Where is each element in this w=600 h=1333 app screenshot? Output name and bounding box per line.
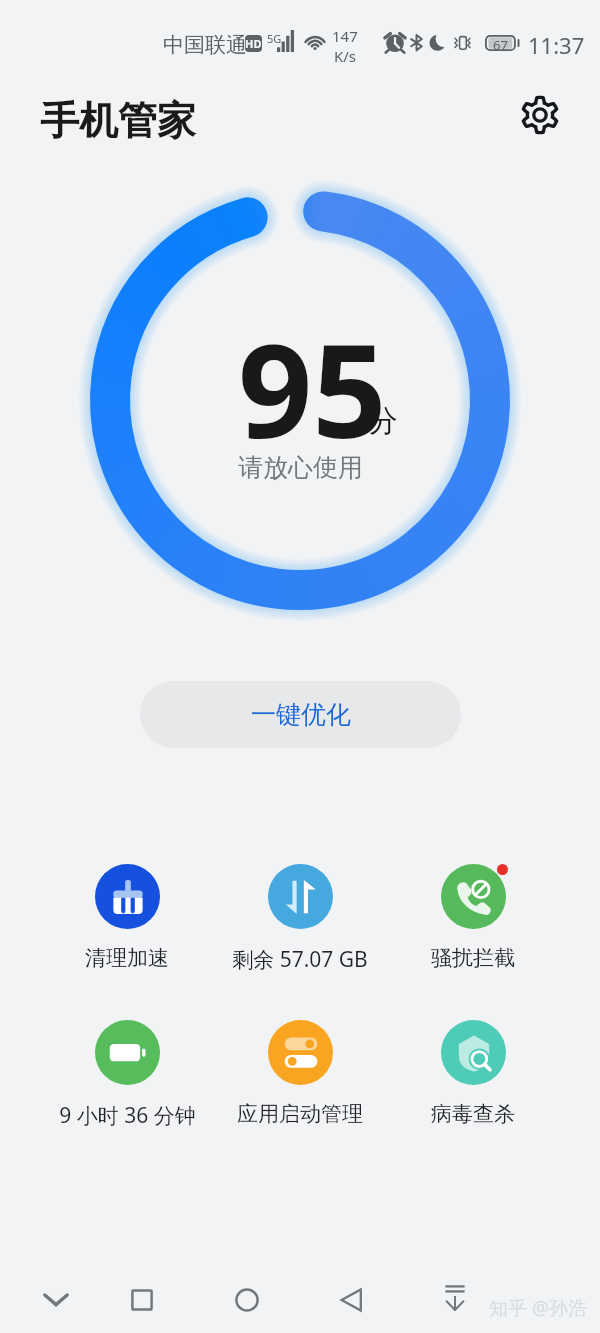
button[interactable]: 清理加速 [41,858,213,993]
button[interactable]: 一键优化 [140,681,461,748]
staticText: 11:37 [528,30,585,60]
staticText: 147 [332,26,358,46]
staticText: 骚扰拦截 [431,945,515,971]
staticText: 应用启动管理 [237,1101,363,1127]
staticText: 67 [493,36,508,52]
button[interactable]: 病毒查杀 [387,1014,559,1149]
button[interactable]: Collapse [30,1273,82,1325]
button[interactable]: Recents [116,1274,168,1326]
button[interactable]: 剩余 57.07 GB [214,858,386,993]
button[interactable]: Settings [514,89,566,141]
staticText: 知乎 @孙浩 [489,1295,588,1321]
staticText: 请放心使用 [238,452,363,483]
staticText: 分 [368,402,398,440]
button[interactable]: Home [221,1274,273,1326]
button[interactable]: 骚扰拦截 [387,858,559,993]
staticText: 一键优化 [251,699,351,730]
staticText: 手机管家 [40,96,196,145]
staticText: HD [245,36,262,51]
staticText: 5G [267,31,282,46]
button[interactable]: Back [326,1274,378,1326]
staticText: 中国联通 [163,32,247,58]
button[interactable]: 9 小时 36 分钟 [41,1014,213,1149]
staticText: 95 [238,299,387,476]
staticText: 病毒查杀 [431,1101,515,1127]
button[interactable]: Hide navigation bar [429,1270,481,1322]
staticText: K/s [334,46,357,66]
staticText: 9 小时 36 分钟 [59,1101,196,1130]
staticText: 剩余 57.07 GB [232,945,368,974]
button[interactable]: 应用启动管理 [214,1014,386,1149]
staticText: 清理加速 [85,945,169,971]
